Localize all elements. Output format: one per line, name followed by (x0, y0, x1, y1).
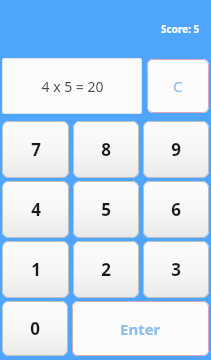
button[interactable]: 8 (73, 121, 139, 178)
button[interactable]: 3 (143, 241, 209, 298)
staticText: 5 (101, 198, 111, 221)
button[interactable]: 5 (73, 181, 139, 238)
staticText: Enter (120, 319, 161, 339)
staticText: 8 (101, 138, 111, 161)
button[interactable]: 7 (2, 121, 69, 178)
button[interactable]: 6 (143, 181, 209, 238)
button[interactable]: 9 (143, 121, 209, 178)
staticText: 0 (30, 317, 40, 340)
staticText: 2 (101, 258, 111, 281)
button[interactable]: 1 (2, 241, 69, 298)
staticText: 4 x 5 = 20 (41, 77, 104, 96)
staticText: C (173, 76, 183, 96)
staticText: 4 (31, 198, 41, 221)
staticText: 6 (171, 198, 181, 221)
staticText: Score: 5 (161, 22, 200, 36)
button[interactable]: 4 x 5 = 20 (2, 58, 142, 114)
staticText: 9 (171, 138, 181, 161)
staticText: 7 (31, 138, 41, 161)
button[interactable]: 2 (73, 241, 139, 298)
button[interactable]: Enter (72, 301, 209, 356)
staticText: 1 (31, 258, 41, 281)
button[interactable]: 4 (2, 181, 69, 238)
staticText: 3 (171, 258, 181, 281)
button[interactable]: 0 (2, 301, 68, 356)
button[interactable]: C (147, 59, 209, 113)
